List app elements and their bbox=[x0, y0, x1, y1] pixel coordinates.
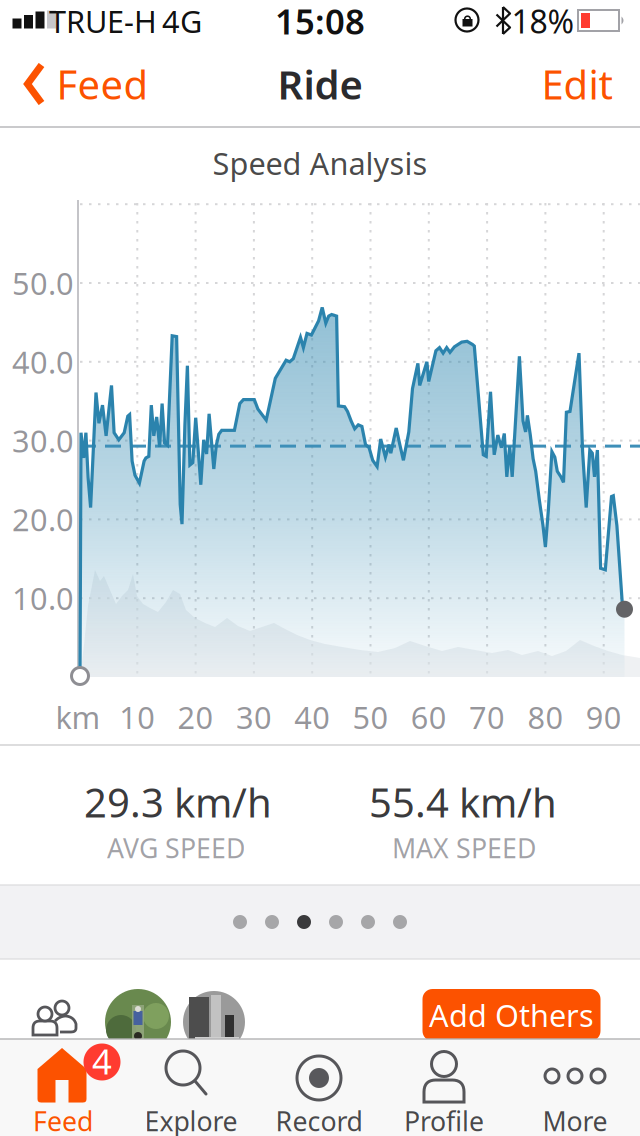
staticText: 10.0 bbox=[12, 578, 74, 618]
staticText: 40.0 bbox=[12, 341, 74, 382]
button[interactable]: More bbox=[513, 1039, 637, 1136]
staticText: 10 bbox=[119, 697, 155, 737]
staticText: Add Others bbox=[429, 995, 594, 1035]
button[interactable]: Edit bbox=[527, 54, 627, 114]
staticText: Feed bbox=[56, 57, 148, 110]
staticText: 90 bbox=[586, 697, 622, 737]
staticText: 15:08 bbox=[275, 0, 365, 44]
staticText: Record bbox=[275, 1103, 362, 1136]
staticText: More bbox=[542, 1103, 607, 1136]
button[interactable]: Athlete photo bbox=[183, 991, 245, 1053]
staticText: 30.0 bbox=[12, 420, 74, 461]
staticText: 50.0 bbox=[12, 263, 74, 303]
staticText: Edit bbox=[541, 57, 612, 110]
staticText: 20.0 bbox=[12, 499, 74, 540]
staticText: 30 bbox=[236, 697, 272, 737]
button[interactable]: Feed bbox=[13, 54, 163, 114]
button[interactable]: Explore bbox=[129, 1039, 253, 1136]
staticText: Explore bbox=[144, 1103, 237, 1136]
button[interactable]: Feed bbox=[1, 1039, 125, 1136]
button[interactable]: Profile bbox=[383, 1039, 507, 1136]
staticText: Ride bbox=[277, 57, 362, 110]
button[interactable]: Athlete photo bbox=[105, 989, 171, 1055]
staticText: 4G bbox=[162, 1, 202, 41]
staticText: 60 bbox=[411, 697, 447, 737]
staticText: 29.3 km/h bbox=[84, 775, 272, 828]
staticText: 70 bbox=[469, 697, 505, 737]
staticText: AVG SPEED bbox=[107, 830, 245, 866]
staticText: 40 bbox=[294, 697, 330, 737]
staticText: 4 bbox=[92, 1038, 112, 1084]
staticText: 80 bbox=[527, 697, 563, 737]
staticText: Speed Analysis bbox=[212, 143, 427, 183]
staticText: 18% bbox=[511, 0, 574, 42]
button[interactable]: Page 3 of 6 bbox=[200, 897, 440, 947]
staticText: Profile bbox=[404, 1103, 484, 1136]
staticText: TRUE-H bbox=[49, 1, 157, 41]
button[interactable]: Add Others bbox=[422, 989, 600, 1041]
staticText: 20 bbox=[178, 697, 214, 737]
button[interactable]: Record bbox=[257, 1039, 381, 1136]
staticText: 55.4 km/h bbox=[369, 775, 557, 828]
staticText: MAX SPEED bbox=[392, 830, 536, 866]
staticText: km bbox=[55, 697, 100, 737]
staticText: 50 bbox=[352, 697, 388, 737]
staticText: Feed bbox=[33, 1103, 93, 1136]
